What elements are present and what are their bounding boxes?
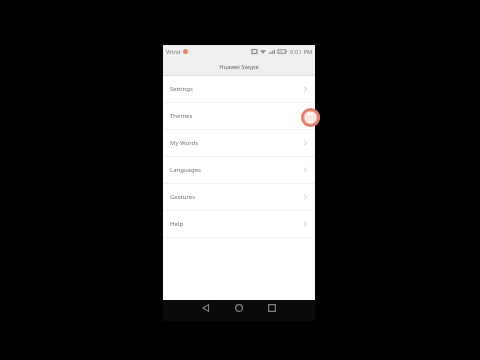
staticText: Wind: [166, 48, 181, 56]
staticText: Huawei Swype: [219, 63, 259, 71]
button[interactable]: Help: [163, 211, 315, 237]
staticText: Help: [170, 220, 184, 228]
button[interactable]: Themes: [163, 103, 315, 129]
button[interactable]: My Words: [163, 130, 315, 156]
button[interactable]: Recent apps: [263, 300, 281, 315]
staticText: Themes: [170, 112, 193, 120]
staticText: Settings: [170, 85, 193, 93]
button[interactable]: Home: [230, 300, 248, 315]
button[interactable]: Languages: [163, 157, 315, 183]
staticText: m: [306, 111, 316, 125]
button[interactable]: Settings: [163, 76, 315, 102]
staticText: Languages: [170, 166, 201, 174]
staticText: Gestures: [170, 193, 196, 201]
staticText: 6:01 PM: [290, 48, 313, 56]
button[interactable]: Gestures: [163, 184, 315, 210]
staticText: My Words: [170, 139, 199, 147]
button[interactable]: Back: [197, 300, 215, 315]
